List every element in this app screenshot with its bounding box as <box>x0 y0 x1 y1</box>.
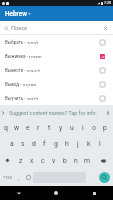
button[interactable]: Вывести - להוציא <box>0 63 113 77</box>
button[interactable]: g <box>50 136 61 152</box>
button[interactable]: v <box>48 152 59 169</box>
staticText: Выбрать - לבחור <box>5 40 39 45</box>
staticText: e <box>26 124 30 132</box>
staticText: d <box>32 140 36 148</box>
staticText: i <box>82 124 84 132</box>
staticText: h <box>65 140 69 148</box>
staticText: k <box>87 140 91 148</box>
staticText: Вывести - להוציא <box>5 68 41 73</box>
staticText: w <box>14 124 20 132</box>
staticText: Suggest content names? Tap for info. <box>9 110 98 116</box>
button[interactable]: s <box>17 136 28 152</box>
button[interactable]: Voice input <box>102 105 113 120</box>
staticText: n <box>74 157 78 165</box>
button[interactable]: Выучить - ללמוד <box>0 91 113 105</box>
staticText: 7:28 <box>104 1 111 5</box>
button[interactable]: Recents <box>75 186 113 200</box>
button[interactable]: y <box>55 120 66 136</box>
staticText: f <box>43 140 46 148</box>
staticText: Выжимка - תמצית <box>5 54 42 59</box>
button[interactable]: Emoji <box>23 169 33 186</box>
button[interactable]: p <box>99 120 110 136</box>
staticText: Поиск <box>11 25 28 32</box>
button[interactable]: c <box>37 152 48 169</box>
button[interactable]: Clear search <box>98 21 113 35</box>
staticText: b <box>63 157 67 165</box>
button[interactable]: r <box>33 120 44 136</box>
staticText: j <box>77 140 79 148</box>
button[interactable]: k <box>83 136 94 152</box>
staticText: Hebrew <box>5 10 27 18</box>
button[interactable]: o <box>88 120 99 136</box>
button[interactable]: f <box>39 136 50 152</box>
button[interactable]: n <box>70 152 81 169</box>
staticText: a <box>10 140 14 148</box>
staticText: m <box>84 157 90 165</box>
button[interactable]: a <box>6 136 17 152</box>
button[interactable]: x <box>26 152 37 169</box>
button[interactable]: i <box>77 120 88 136</box>
staticText: u <box>70 124 74 132</box>
button[interactable]: Back <box>0 186 37 200</box>
button[interactable]: q <box>0 120 11 136</box>
button[interactable]: Expand suggestions <box>0 105 5 120</box>
staticText: s <box>21 140 25 148</box>
button[interactable]: Search <box>95 169 113 186</box>
button[interactable]: z <box>15 152 26 169</box>
button[interactable]: m <box>81 152 92 169</box>
staticText: g <box>54 140 58 148</box>
button[interactable]: Выбрать - לבחור <box>0 35 113 49</box>
button[interactable]: d <box>28 136 39 152</box>
button[interactable]: Shift <box>0 152 15 169</box>
staticText: Вывод - מסקנה <box>5 82 37 87</box>
button[interactable]: b <box>59 152 70 169</box>
button[interactable]: t <box>44 120 55 136</box>
staticText: . <box>90 175 92 181</box>
staticText: ?123 <box>3 175 12 180</box>
staticText: t <box>48 124 51 132</box>
staticText: y <box>59 124 63 132</box>
button[interactable]: , <box>14 169 23 186</box>
staticText: x <box>30 157 34 165</box>
button[interactable]: Backspace <box>92 152 113 169</box>
staticText: p <box>103 124 107 132</box>
button[interactable]: u <box>66 120 77 136</box>
staticText: c <box>41 157 45 165</box>
staticText: z <box>19 157 23 165</box>
button[interactable]: h <box>61 136 72 152</box>
button[interactable]: ?123 <box>0 169 14 186</box>
staticText: v <box>52 157 56 165</box>
button[interactable]: w <box>11 120 22 136</box>
staticText: q <box>4 124 8 132</box>
button[interactable]: j <box>72 136 83 152</box>
button[interactable]: Выжимка - תמצית <box>0 49 113 63</box>
button[interactable]: e <box>22 120 33 136</box>
button[interactable]: Вывод - מסקנה <box>0 77 113 91</box>
staticText: o <box>92 124 96 132</box>
staticText: l <box>99 140 101 148</box>
button[interactable]: l <box>94 136 105 152</box>
staticText: , <box>18 175 20 181</box>
staticText: Выучить - ללמוד <box>5 96 39 101</box>
staticText: r <box>37 124 40 132</box>
button[interactable]: Home <box>37 186 75 200</box>
button[interactable]: Suggest content names? Tap for info. <box>5 105 102 120</box>
